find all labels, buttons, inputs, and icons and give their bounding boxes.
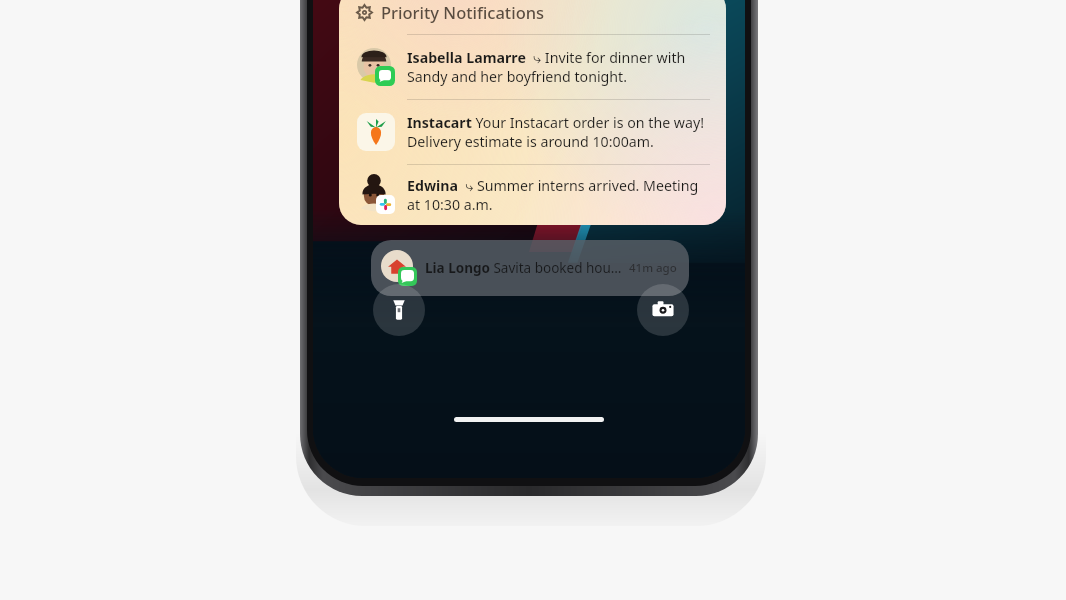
staticText: Priority Notifications (381, 1, 545, 23)
button[interactable]: Isabella Lamarre ⤷ Invite for dinner wit… (339, 35, 726, 99)
staticText: Isabella Lamarre ⤷ Invite for dinner wit… (407, 48, 712, 86)
staticText: Instacart Your Instacart order is on the… (407, 113, 712, 151)
button[interactable]: Lia Longo Savita booked house… (371, 240, 689, 296)
button[interactable]: Edwina ⤷ Summer interns arrived. Meeting… (339, 165, 726, 225)
staticText: 41m ago (629, 260, 677, 276)
button[interactable]: Camera (637, 284, 689, 336)
staticText: Lia Longo Savita booked house… (425, 259, 623, 277)
button[interactable]: Flashlight (373, 284, 425, 336)
button[interactable]: Priority Notifications (339, 0, 726, 225)
button[interactable]: Instacart Your Instacart order is on the… (339, 100, 726, 164)
staticText: Edwina ⤷ Summer interns arrived. Meeting… (407, 176, 712, 214)
